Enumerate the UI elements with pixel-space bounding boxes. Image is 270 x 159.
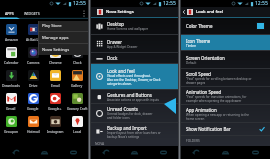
button[interactable]: Backup and Import: [91, 123, 178, 140]
button[interactable]: At Bat Lit: [22, 24, 44, 47]
staticText: FOLDERS: [186, 139, 200, 143]
button[interactable]: Color Theme: [181, 18, 270, 34]
button[interactable]: Downloads: [0, 70, 22, 93]
button[interactable]: Home: [120, 146, 149, 159]
button[interactable]: Drawer: [91, 35, 178, 52]
button[interactable]: Recent apps: [240, 146, 270, 159]
staticText: 12:55: [163, 0, 176, 7]
staticText: Unread badges for dock, drawer and folde…: [107, 112, 153, 120]
button[interactable]: Scroll Speed: [181, 69, 270, 86]
staticText: Screen Orientation: [186, 55, 225, 61]
button[interactable]: Unread Counts: [91, 104, 178, 122]
staticText: Drawer: [107, 39, 123, 45]
button[interactable]: Chrome: [44, 47, 66, 70]
staticText: Timbre: [186, 44, 196, 48]
staticText: Local: [73, 129, 82, 134]
button[interactable]: Gallery: [66, 70, 88, 93]
button[interactable]: WIDGETS: [19, 7, 44, 19]
button[interactable]: Recent apps: [59, 146, 88, 159]
staticText: Google+: [48, 106, 62, 111]
button[interactable]: Books: [44, 24, 66, 47]
staticText: Chrome: [49, 60, 62, 65]
staticText: Gallery: [71, 83, 83, 88]
button[interactable]: Email: [44, 70, 66, 93]
button[interactable]: Groupon: [0, 116, 22, 139]
button[interactable]: Calendar: [0, 47, 22, 70]
staticText: 12:55: [73, 0, 86, 7]
staticText: When opening a new app or returning to t…: [186, 113, 249, 121]
staticText: Visual effects used throughout. Also see…: [107, 74, 161, 86]
button[interactable]: Goosey Craft: [66, 93, 88, 116]
staticText: Manage apps: [42, 35, 69, 41]
staticText: Import layout from other launchers or ba…: [107, 131, 161, 139]
button[interactable]: Instagram: [44, 116, 66, 139]
button[interactable]: Home: [30, 146, 59, 159]
button[interactable]: Home: [210, 146, 240, 159]
staticText: Desktop: [107, 21, 125, 27]
staticText: Look and feel: [196, 9, 223, 15]
button[interactable]: Show Notification Bar: [181, 123, 270, 135]
button[interactable]: Hotmail: [22, 116, 44, 139]
button[interactable]: Camera: [22, 47, 44, 70]
staticText: Gmail: [6, 106, 16, 111]
other: Show notification bar enabled: [259, 126, 265, 132]
staticText: 12:55: [255, 0, 268, 7]
button[interactable]: Dock: [91, 53, 178, 63]
button[interactable]: App Animation: [181, 105, 270, 122]
staticText: Look and feel: [107, 68, 135, 74]
button[interactable]: Icon Theme: [181, 35, 270, 50]
staticText: Show Notification Bar: [186, 126, 231, 132]
staticText: Groupon: [4, 129, 19, 134]
staticText: Color Theme: [186, 23, 213, 29]
button[interactable]: Google: [22, 93, 44, 116]
button[interactable]: Back: [181, 146, 210, 159]
staticText: Gestures and Buttons: [107, 92, 152, 98]
staticText: Downloads: [2, 83, 20, 88]
staticText: WIDGETS: [24, 11, 40, 16]
staticText: Icon Theme: [186, 38, 211, 44]
staticText: Calendar: [4, 60, 19, 65]
button[interactable]: Amazon: [0, 24, 22, 47]
staticText: Hotmail: [27, 129, 40, 134]
staticText: Associate actions or apps with inputs: [107, 98, 160, 102]
button[interactable]: Boxer: [66, 24, 88, 47]
staticText: Default: [186, 61, 197, 65]
staticText: Nova Settings: [106, 9, 134, 15]
staticText: APPS: [5, 11, 14, 16]
button[interactable]: Manage apps: [38, 32, 88, 43]
other: Navigate up: [182, 9, 186, 15]
staticText: Camera: [27, 60, 40, 65]
button[interactable]: Look and feel: [91, 64, 178, 89]
button[interactable]: Local: [66, 116, 88, 139]
staticText: Email: [51, 83, 60, 88]
staticText: Goosey Craft: [67, 106, 88, 111]
staticText: Amazon: [5, 37, 18, 42]
button[interactable]: Gmail: [0, 93, 22, 116]
button[interactable]: Gestures and Buttons: [91, 90, 178, 103]
staticText: Instagram: [47, 129, 64, 134]
button[interactable]: Google+: [44, 93, 66, 116]
button[interactable]: Desktop: [91, 18, 178, 34]
button[interactable]: Recent apps: [149, 146, 178, 159]
button[interactable]: Nova Settings: [38, 44, 88, 55]
staticText: Google: [27, 106, 39, 111]
staticText: "Fast" speeds for scrolling between desk…: [186, 77, 252, 85]
staticText: Animation Speed: [186, 89, 222, 95]
button[interactable]: Clock: [66, 47, 88, 70]
button[interactable]: Animation Speed: [181, 87, 270, 104]
staticText: Play Store: [42, 23, 62, 29]
button[interactable]: Drive: [22, 70, 44, 93]
staticText: Home Screens and wallpaper: [107, 27, 149, 31]
button[interactable]: Play Store: [38, 21, 88, 31]
staticText: NOVA: [95, 141, 105, 146]
button[interactable]: APPS: [0, 7, 19, 19]
staticText: Backup and Import: [107, 125, 147, 131]
button[interactable]: Back: [91, 146, 120, 159]
button[interactable]: Screen Orientation: [181, 51, 270, 68]
staticText: Dock: [107, 55, 118, 61]
staticText: Nova Settings: [42, 47, 70, 53]
button[interactable]: Back: [0, 146, 30, 159]
button[interactable]: More options: [83, 10, 85, 17]
